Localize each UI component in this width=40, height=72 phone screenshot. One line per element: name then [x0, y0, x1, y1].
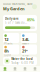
staticText: 85% — [27, 17, 35, 22]
staticText: Daily care — [5, 17, 19, 20]
button[interactable]: 12 — [3, 33, 19, 43]
staticText: Today · 6:00 PM — [11, 61, 33, 65]
button[interactable]: Water the basil — [0, 54, 40, 65]
button[interactable]: Tasks — [20, 66, 30, 72]
staticText: Plants — [4, 42, 12, 46]
staticText: 8h — [4, 48, 9, 54]
staticText: 3.4L — [22, 37, 29, 42]
staticText: My Garden — [3, 6, 25, 11]
button[interactable]: Profile — [30, 66, 40, 72]
button[interactable]: Profile — [32, 4, 37, 9]
staticText: Water — [22, 42, 29, 46]
staticText: 21° — [22, 48, 28, 54]
staticText: GOOD MORNING, SAM — [3, 2, 32, 6]
button[interactable]: 8h — [3, 44, 19, 54]
staticText: Light — [4, 54, 11, 57]
button[interactable]: Home — [0, 66, 10, 72]
staticText: 5 of 7 tasks done — [5, 21, 27, 24]
button[interactable]: Plants — [10, 66, 20, 72]
staticText: Temp — [22, 54, 29, 57]
button[interactable]: 3.4L — [21, 33, 37, 43]
button[interactable]: 21° — [21, 44, 37, 54]
staticText: Water the basil — [11, 57, 33, 61]
staticText: 12 — [4, 37, 8, 42]
